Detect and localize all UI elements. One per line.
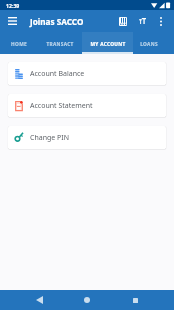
staticText: Account Statement: [30, 101, 93, 111]
staticText: Account Balance: [30, 69, 85, 79]
staticText: 12:39: [6, 2, 20, 9]
button[interactable]: Back: [25, 290, 53, 310]
button[interactable]: TRANSACT: [38, 32, 82, 54]
button[interactable]: Calculator: [113, 10, 132, 32]
button[interactable]: Change PIN: [8, 126, 166, 149]
button[interactable]: Account Balance: [8, 62, 166, 85]
staticText: HOME: [11, 41, 27, 48]
button[interactable]: Recent apps: [121, 290, 149, 310]
button[interactable]: LOANS: [133, 32, 165, 54]
staticText: TRANSACT: [46, 41, 74, 48]
staticText: MY ACCOUNT: [90, 41, 126, 48]
staticText: LOANS: [140, 41, 158, 48]
button[interactable]: HOME: [0, 32, 38, 54]
button[interactable]: Home: [73, 290, 101, 310]
button[interactable]: Account Statement: [8, 94, 166, 117]
button[interactable]: Change text size: [133, 10, 152, 32]
staticText: Change PIN: [30, 133, 70, 143]
button[interactable]: Open navigation drawer: [0, 10, 25, 32]
staticText: Joinas SACCO: [30, 16, 84, 27]
button[interactable]: MY ACCOUNT: [82, 32, 133, 54]
button[interactable]: More options: [153, 10, 169, 32]
